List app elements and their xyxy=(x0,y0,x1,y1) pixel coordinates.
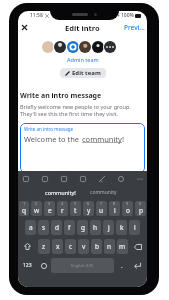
button[interactable]: k xyxy=(116,220,127,235)
button[interactable]: 8 xyxy=(109,201,120,216)
staticText: w xyxy=(34,206,40,215)
staticText: Write an intro message xyxy=(20,91,102,101)
staticText: 11:58 xyxy=(30,12,43,19)
button[interactable]: z xyxy=(38,239,50,254)
staticText: 2 xyxy=(35,201,38,206)
staticText: Previ... xyxy=(124,23,145,32)
button[interactable]: x xyxy=(52,239,63,254)
staticText: v xyxy=(82,242,86,251)
staticText: k xyxy=(120,223,124,232)
button[interactable]: c xyxy=(65,239,76,254)
staticText: 1 xyxy=(23,201,26,206)
staticText: English (US) xyxy=(71,263,94,268)
button[interactable]: j xyxy=(103,220,114,235)
staticText: o xyxy=(126,206,130,215)
staticText: 8 xyxy=(113,201,116,206)
staticText: 123 xyxy=(23,262,32,269)
staticText: community xyxy=(82,134,122,144)
staticText: r xyxy=(61,206,64,215)
staticText: a xyxy=(29,223,33,232)
button[interactable]: Close xyxy=(18,21,31,34)
staticText: Edit team xyxy=(72,69,101,77)
staticText: z xyxy=(42,242,46,251)
staticText: d xyxy=(55,223,59,232)
staticText: Briefly welcome new people to your group… xyxy=(20,103,145,117)
button[interactable]: 7 xyxy=(96,201,107,216)
button[interactable]: Previ... xyxy=(124,23,147,32)
staticText: y xyxy=(87,206,91,215)
staticText: 7 xyxy=(100,201,103,206)
button[interactable]: Keyboard tool xyxy=(96,173,107,184)
staticText: s xyxy=(42,223,46,232)
button[interactable]: f xyxy=(64,220,75,235)
button[interactable]: Keyboard tool xyxy=(58,173,69,184)
staticText: u xyxy=(99,206,104,215)
button[interactable]: 4 xyxy=(57,201,68,216)
button[interactable]: 6 xyxy=(83,201,94,216)
staticText: 9 xyxy=(126,201,129,206)
staticText: Edit intro xyxy=(65,23,100,33)
button[interactable]: 3 xyxy=(44,201,55,216)
button[interactable]: d xyxy=(51,220,62,235)
staticText: b xyxy=(95,242,99,251)
button[interactable]: a xyxy=(25,220,36,235)
staticText: community! xyxy=(45,189,76,196)
button[interactable]: 123 xyxy=(19,258,36,273)
button[interactable]: . xyxy=(116,258,127,273)
staticText: . xyxy=(121,262,123,270)
staticText: j xyxy=(108,223,110,232)
staticText: n xyxy=(107,242,112,251)
staticText: ! xyxy=(122,134,125,144)
staticText: h xyxy=(93,223,98,232)
button[interactable]: Keyboard tool xyxy=(39,173,50,184)
button[interactable]: v xyxy=(78,239,89,254)
button[interactable]: Admin team xyxy=(67,56,99,63)
button[interactable]: Space xyxy=(51,258,114,273)
staticText: Admin team xyxy=(67,56,99,63)
button[interactable]: 5 xyxy=(70,201,81,216)
staticText: 5 xyxy=(74,201,77,206)
staticText: 100% xyxy=(121,12,134,19)
button[interactable]: Keyboard tool xyxy=(20,173,31,184)
staticText: 4 xyxy=(61,201,64,206)
button[interactable]: 2 xyxy=(31,201,42,216)
staticText: f xyxy=(68,223,71,232)
button[interactable]: community! xyxy=(39,185,82,199)
button[interactable]: Keyboard tool xyxy=(77,173,88,184)
button[interactable]: Keyboard tool xyxy=(115,173,126,184)
button[interactable]: s xyxy=(38,220,49,235)
button[interactable]: g xyxy=(77,220,88,235)
staticText: e xyxy=(48,206,52,215)
button[interactable]: Emoji xyxy=(38,258,49,273)
staticText: Write an intro message xyxy=(24,126,74,132)
button[interactable]: community xyxy=(82,185,125,199)
staticText: Welcome to the xyxy=(24,134,82,144)
staticText: q xyxy=(22,206,26,215)
staticText: 6 xyxy=(87,201,90,206)
button[interactable]: b xyxy=(91,239,102,254)
button[interactable]: Edit team xyxy=(60,68,106,78)
button[interactable]: Backspace xyxy=(130,239,146,254)
button[interactable]: h xyxy=(90,220,101,235)
button[interactable]: 1 xyxy=(19,201,29,216)
staticText: 3 xyxy=(48,201,51,206)
staticText: 0 xyxy=(139,201,142,206)
button[interactable]: Shift xyxy=(19,239,36,254)
staticText: i xyxy=(114,206,116,215)
button[interactable]: 9 xyxy=(122,201,133,216)
staticText: community xyxy=(90,189,117,196)
staticText: m xyxy=(119,242,126,251)
button[interactable]: n xyxy=(104,239,115,254)
staticText: t xyxy=(74,206,77,215)
staticText: g xyxy=(81,223,85,232)
button[interactable]: Enter xyxy=(129,258,146,273)
staticText: x xyxy=(56,242,60,251)
button[interactable]: m xyxy=(117,239,128,254)
button[interactable]: l xyxy=(129,220,140,235)
button[interactable]: Write an intro message xyxy=(20,123,145,173)
button[interactable]: 0 xyxy=(135,201,146,216)
staticText: c xyxy=(69,242,73,251)
staticText: l xyxy=(134,223,136,232)
staticText: p xyxy=(139,206,143,215)
button[interactable]: Keyboard tool xyxy=(134,173,145,184)
